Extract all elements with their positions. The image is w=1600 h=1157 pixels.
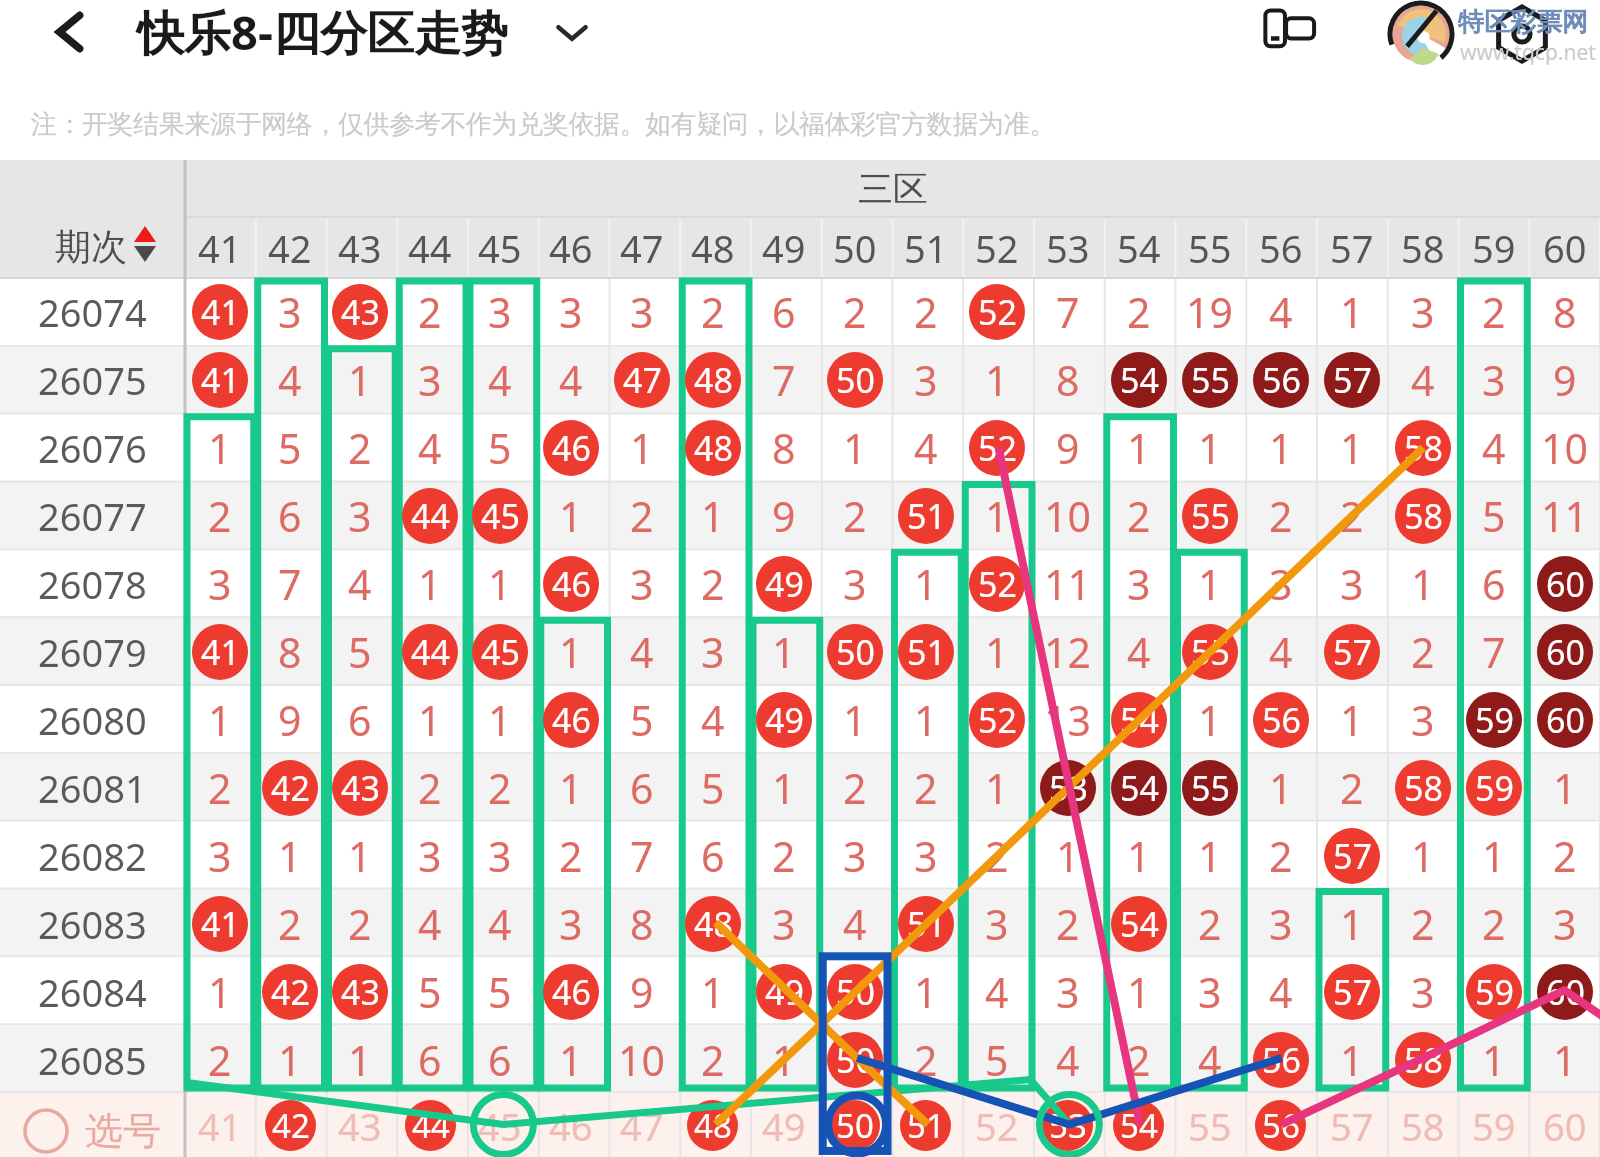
button[interactable]: 1 [465,550,535,618]
button[interactable]: 60 [1529,217,1600,278]
button[interactable]: 1 [325,346,395,414]
button[interactable]: 4 [465,346,535,414]
button[interactable]: 57 [1316,822,1387,890]
button[interactable]: 1 [1387,822,1458,890]
button[interactable]: 11 [1529,482,1600,550]
button[interactable]: 1 [535,482,606,550]
button[interactable]: 1 [961,482,1032,550]
button[interactable]: 60 [1529,686,1600,754]
button[interactable]: 10 [1529,414,1600,482]
button[interactable]: 1 [395,686,465,754]
button[interactable]: 2 [1387,618,1458,686]
button[interactable]: 1 [748,1026,819,1094]
button[interactable]: 8 [255,618,325,686]
button[interactable]: 47 [606,1094,677,1157]
button[interactable]: 47 [606,217,677,278]
button[interactable]: 49 [748,686,819,754]
button[interactable]: 2 [961,822,1032,890]
button[interactable]: 1 [535,754,606,822]
button[interactable]: 7 [1458,618,1529,686]
button[interactable]: 46 [535,217,606,278]
button[interactable]: 13 [1032,686,1103,754]
button[interactable]: 54 [1103,890,1174,958]
button[interactable]: 46 [535,1094,606,1157]
button[interactable]: 54 [1103,686,1174,754]
button[interactable]: 1 [819,414,890,482]
button[interactable]: 3 [465,822,535,890]
button[interactable]: 52 [961,1094,1032,1157]
button[interactable]: 1 [1174,550,1245,618]
button[interactable]: 1 [748,618,819,686]
button[interactable]: 5 [465,414,535,482]
button[interactable]: 54 [1103,346,1174,414]
button[interactable]: 51 [890,482,961,550]
button[interactable]: 2 [819,754,890,822]
button[interactable]: 26081 [0,754,185,822]
button[interactable]: 4 [1174,1026,1245,1094]
button[interactable]: 1 [890,550,961,618]
button[interactable]: Back [38,0,102,64]
button[interactable]: 59 [1458,1094,1529,1157]
button[interactable]: 48 [677,890,748,958]
button[interactable]: 3 [325,482,395,550]
button[interactable]: 46 [535,958,606,1026]
button[interactable]: 47 [606,346,677,414]
button[interactable]: 41 [185,618,255,686]
button[interactable]: 1 [1458,822,1529,890]
button[interactable]: 3 [1529,890,1600,958]
button[interactable]: 4 [1103,618,1174,686]
button[interactable]: 41 [185,890,255,958]
button[interactable]: 3 [1387,686,1458,754]
button[interactable]: 49 [748,550,819,618]
button[interactable]: 6 [465,1026,535,1094]
button[interactable]: 3 [606,278,677,346]
button[interactable]: 41 [185,217,255,278]
button[interactable]: 5 [961,1026,1032,1094]
button[interactable]: 4 [1458,414,1529,482]
button[interactable]: 1 [961,754,1032,822]
button[interactable]: 41 [185,346,255,414]
button[interactable]: 2 [535,822,606,890]
button[interactable]: 3 [535,278,606,346]
button[interactable]: 3 [1458,346,1529,414]
button[interactable]: 5 [606,686,677,754]
button[interactable]: 2 [890,278,961,346]
button[interactable]: 1 [748,754,819,822]
button[interactable]: 3 [1103,550,1174,618]
button[interactable]: 42 [255,958,325,1026]
button[interactable]: 2 [1032,890,1103,958]
button[interactable]: 1 [325,1026,395,1094]
button[interactable]: 9 [1529,346,1600,414]
button[interactable]: 4 [1245,278,1316,346]
button[interactable]: 50 [819,958,890,1026]
button[interactable]: 3 [961,890,1032,958]
button[interactable]: 1 [1316,278,1387,346]
button[interactable]: 3 [395,822,465,890]
button[interactable]: 1 [325,822,395,890]
button[interactable]: 2 [255,890,325,958]
button[interactable]: 8 [1529,278,1600,346]
button[interactable]: 60 [1529,618,1600,686]
button[interactable]: 3 [465,278,535,346]
button[interactable]: 11 [1032,550,1103,618]
button[interactable]: 54 [1103,754,1174,822]
button[interactable]: 3 [1245,550,1316,618]
button[interactable]: 2 [819,278,890,346]
button[interactable]: 59 [1458,217,1529,278]
button[interactable]: 41 [185,1094,255,1157]
button[interactable]: 54 [1103,1094,1174,1157]
button[interactable]: 1 [677,958,748,1026]
button[interactable]: 快乐8-四分区走势 [137,0,508,64]
button[interactable]: 9 [606,958,677,1026]
button[interactable]: 43 [325,1094,395,1157]
button[interactable]: 2 [890,1026,961,1094]
button[interactable]: 55 [1174,1094,1245,1157]
button[interactable]: 2 [1387,890,1458,958]
button[interactable]: 50 [819,217,890,278]
button[interactable]: 1 [1316,414,1387,482]
button[interactable]: 48 [677,1094,748,1157]
button[interactable]: 4 [606,618,677,686]
button[interactable]: 3 [1032,958,1103,1026]
button[interactable]: 1 [1458,1026,1529,1094]
button[interactable]: 1 [1174,414,1245,482]
